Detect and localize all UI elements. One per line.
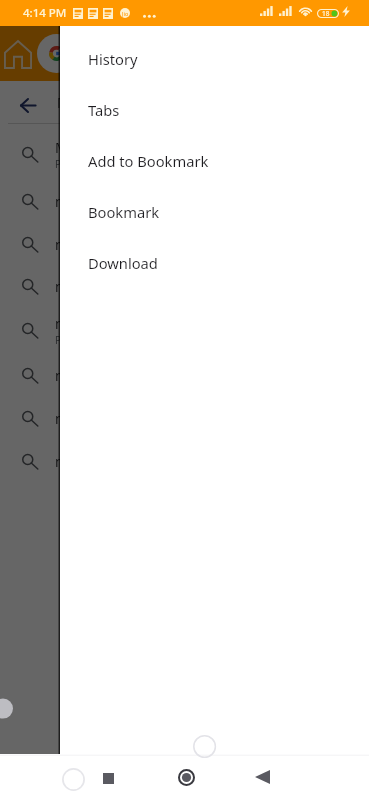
staticText: Add to Bookmark	[88, 151, 209, 171]
button[interactable]: Bookmark	[60, 186, 369, 237]
staticText: Download	[88, 253, 158, 273]
staticText: Mobile phone	[57, 93, 148, 112]
staticText: 4:14 PM	[23, 5, 67, 21]
button[interactable]: History	[60, 33, 369, 84]
button[interactable]: Add to Bookmark	[60, 135, 369, 186]
staticText: Jio	[122, 10, 129, 17]
button[interactable]: Stop	[91, 761, 125, 795]
button[interactable]: Tabs	[60, 84, 369, 135]
button[interactable]: Download	[60, 237, 369, 288]
staticText: mobiles	[55, 277, 107, 296]
staticText: Popular searches	[55, 157, 136, 171]
staticText: mobile covers	[55, 409, 147, 428]
button[interactable]: Back	[245, 760, 279, 794]
staticText: Mobile phones	[55, 138, 153, 157]
staticText: mobile shop near me	[55, 452, 195, 471]
staticText: mobile phone under 15000	[55, 314, 234, 333]
staticText: mobile legends	[55, 192, 156, 211]
staticText: History	[88, 49, 138, 69]
staticText: mobile price in india	[55, 235, 189, 254]
staticText: mobile recharge	[55, 366, 163, 385]
staticText: Bookmark	[88, 202, 160, 222]
button[interactable]: Recent apps	[56, 762, 90, 796]
staticText: Tabs	[88, 100, 120, 120]
staticText: 18	[322, 9, 330, 18]
button[interactable]: Home	[169, 760, 203, 794]
staticText: Popular searches	[55, 333, 136, 347]
